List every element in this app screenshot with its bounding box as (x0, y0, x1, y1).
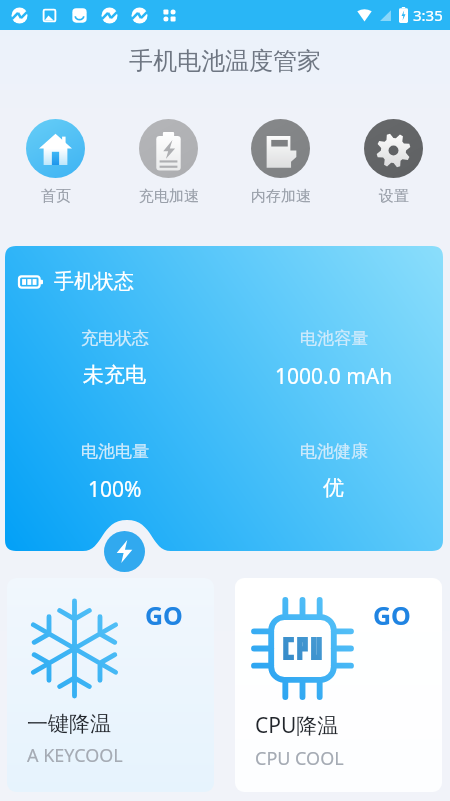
button[interactable]: GO (7, 578, 214, 792)
staticText: A KEYCOOL (27, 743, 123, 768)
staticText: 100% (88, 475, 142, 504)
staticText: 3:35 (413, 5, 443, 25)
staticText: 内存加速 (251, 187, 310, 206)
staticText: CPU降温 (255, 711, 339, 740)
staticText: 设置 (379, 187, 409, 206)
button[interactable]: 首页 (26, 119, 85, 206)
staticText: 优 (323, 475, 344, 501)
staticText: 充电加速 (139, 187, 198, 206)
staticText: GO (145, 598, 183, 632)
staticText: 电池容量 (300, 328, 368, 349)
staticText: 1000.0 mAh (275, 362, 393, 391)
staticText: 一键降温 (27, 711, 111, 737)
staticText: CPU COOL (255, 746, 344, 771)
staticText: 电池健康 (300, 441, 368, 462)
staticText: 充电状态 (81, 328, 149, 349)
staticText: 未充电 (83, 362, 146, 388)
staticText: 电池电量 (81, 441, 149, 462)
button[interactable]: 内存加速 (251, 119, 310, 206)
staticText: 首页 (41, 187, 71, 206)
staticText: GO (373, 598, 411, 632)
button[interactable]: GO (235, 578, 442, 792)
button[interactable]: 设置 (364, 119, 423, 206)
staticText: 手机状态 (54, 269, 134, 294)
button[interactable]: 充电加速 (139, 119, 198, 206)
staticText: 手机电池温度管家 (129, 46, 321, 76)
